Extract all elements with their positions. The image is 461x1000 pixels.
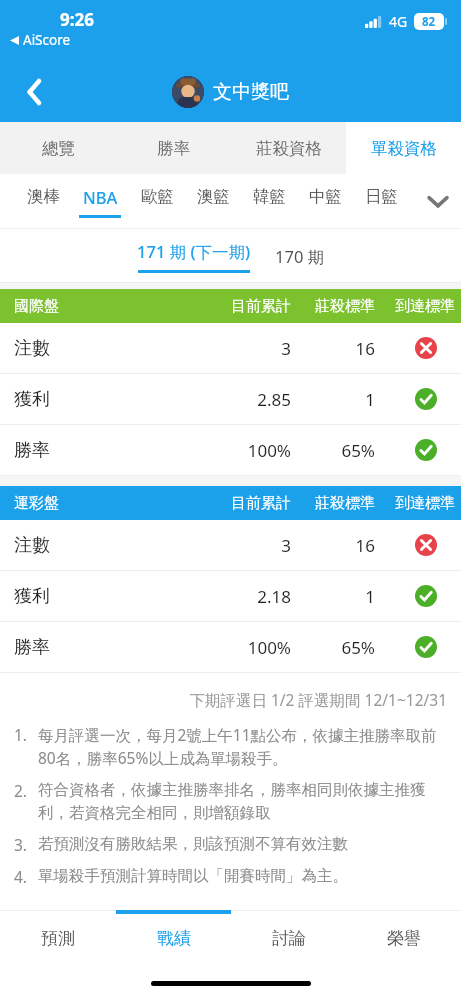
staticText: 100%	[203, 636, 291, 659]
staticText: 100%	[203, 439, 291, 462]
button[interactable]: 170 期	[271, 239, 329, 274]
button[interactable]: Expand leagues	[415, 174, 461, 229]
staticText: 4G	[389, 12, 408, 31]
staticText: 勝率	[14, 439, 50, 462]
staticText: 下期評選日 1/2 評選期間 12/1~12/31	[0, 689, 447, 710]
staticText: 注數	[14, 534, 50, 557]
button[interactable]: 注數	[0, 520, 461, 570]
staticText: 170 期	[275, 245, 325, 268]
staticText: 注數	[14, 337, 50, 360]
staticText: 3	[203, 534, 291, 557]
button[interactable]: 171 期 (下一期)	[133, 240, 255, 273]
button[interactable]: 獲利	[0, 374, 461, 424]
staticText: 2.	[14, 780, 38, 801]
button[interactable]: 澳棒	[14, 174, 71, 229]
button[interactable]: Back	[12, 70, 56, 114]
staticText: 若預測沒有勝敗結果，則該預測不算有效注數	[38, 834, 445, 854]
staticText: 3.	[14, 834, 38, 855]
staticText: 榮譽	[387, 928, 421, 949]
button[interactable]: 日籃	[353, 174, 409, 229]
staticText: 82	[422, 14, 436, 30]
button[interactable]: 討論	[231, 910, 346, 966]
staticText: 預測	[41, 928, 75, 949]
staticText: 韓籃	[253, 186, 286, 207]
staticText: 2.85	[203, 388, 291, 411]
staticText: 文中獎吧	[213, 80, 289, 104]
button[interactable]: 莊殺資格	[231, 122, 346, 174]
button[interactable]: 注數	[0, 323, 461, 373]
staticText: 中籃	[309, 186, 342, 207]
button[interactable]: 勝率	[0, 425, 461, 475]
staticText: 2.18	[203, 585, 291, 608]
button[interactable]: 獲利	[0, 571, 461, 621]
staticText: 日籃	[365, 186, 398, 207]
staticText: 單殺資格	[371, 138, 437, 159]
staticText: 勝率	[14, 636, 50, 659]
staticText: 3	[203, 337, 291, 360]
button[interactable]: 預測	[0, 910, 116, 966]
staticText: 單場殺手預測計算時間以「開賽時間」為主。	[38, 866, 445, 886]
staticText: 9:26	[60, 8, 94, 31]
staticText: NBA	[83, 186, 118, 208]
staticText: 澳籃	[197, 186, 230, 207]
staticText: 討論	[272, 928, 306, 949]
button[interactable]: 文中獎吧	[172, 76, 289, 108]
staticText: 1.	[14, 724, 38, 745]
button[interactable]: 榮譽	[346, 910, 461, 966]
staticText: 4.	[14, 866, 38, 887]
button[interactable]: 勝率	[116, 122, 231, 174]
staticText: 勝率	[157, 138, 190, 159]
button[interactable]: 勝率	[0, 622, 461, 672]
staticText: 國際盤	[14, 297, 59, 316]
button[interactable]: 總覽	[0, 122, 116, 174]
button[interactable]: 澳籃	[185, 174, 241, 229]
staticText: 獲利	[14, 388, 50, 411]
staticText: 澳棒	[27, 186, 60, 207]
staticText: 獲利	[14, 585, 50, 608]
staticText: 歐籃	[141, 186, 174, 207]
staticText: 65%	[297, 636, 375, 659]
staticText: 戰績	[157, 928, 191, 949]
staticText: 1	[297, 585, 375, 608]
staticText: 16	[297, 534, 375, 557]
staticText: 16	[297, 337, 375, 360]
staticText: 莊殺資格	[256, 138, 322, 159]
staticText: 運彩盤	[14, 494, 59, 513]
staticText: 莊殺標準	[297, 297, 375, 316]
button[interactable]: 單殺資格	[346, 122, 461, 174]
staticText: 目前累計	[203, 494, 291, 513]
button[interactable]: 歐籃	[128, 174, 185, 229]
staticText: 總覽	[42, 138, 75, 159]
staticText: 65%	[297, 439, 375, 462]
staticText: AiScore	[23, 31, 71, 49]
staticText: 符合資格者，依據主推勝率排名，勝率相同則依據主推獲利，若資格完全相同，則增額錄取	[38, 780, 445, 823]
staticText: 每月評選一次，每月2號上午11點公布，依據主推勝率取前80名，勝率65%以上成為…	[38, 724, 445, 769]
button[interactable]: NBA	[71, 174, 128, 229]
staticText: 莊殺標準	[297, 494, 375, 513]
button[interactable]: 戰績	[116, 910, 231, 966]
staticText: 到達標準	[383, 494, 455, 513]
staticText: 到達標準	[383, 297, 455, 316]
staticText: 171 期 (下一期)	[137, 240, 251, 263]
button[interactable]: 韓籃	[241, 174, 297, 229]
staticText: 目前累計	[203, 297, 291, 316]
button[interactable]: 中籃	[297, 174, 353, 229]
staticText: 1	[297, 388, 375, 411]
